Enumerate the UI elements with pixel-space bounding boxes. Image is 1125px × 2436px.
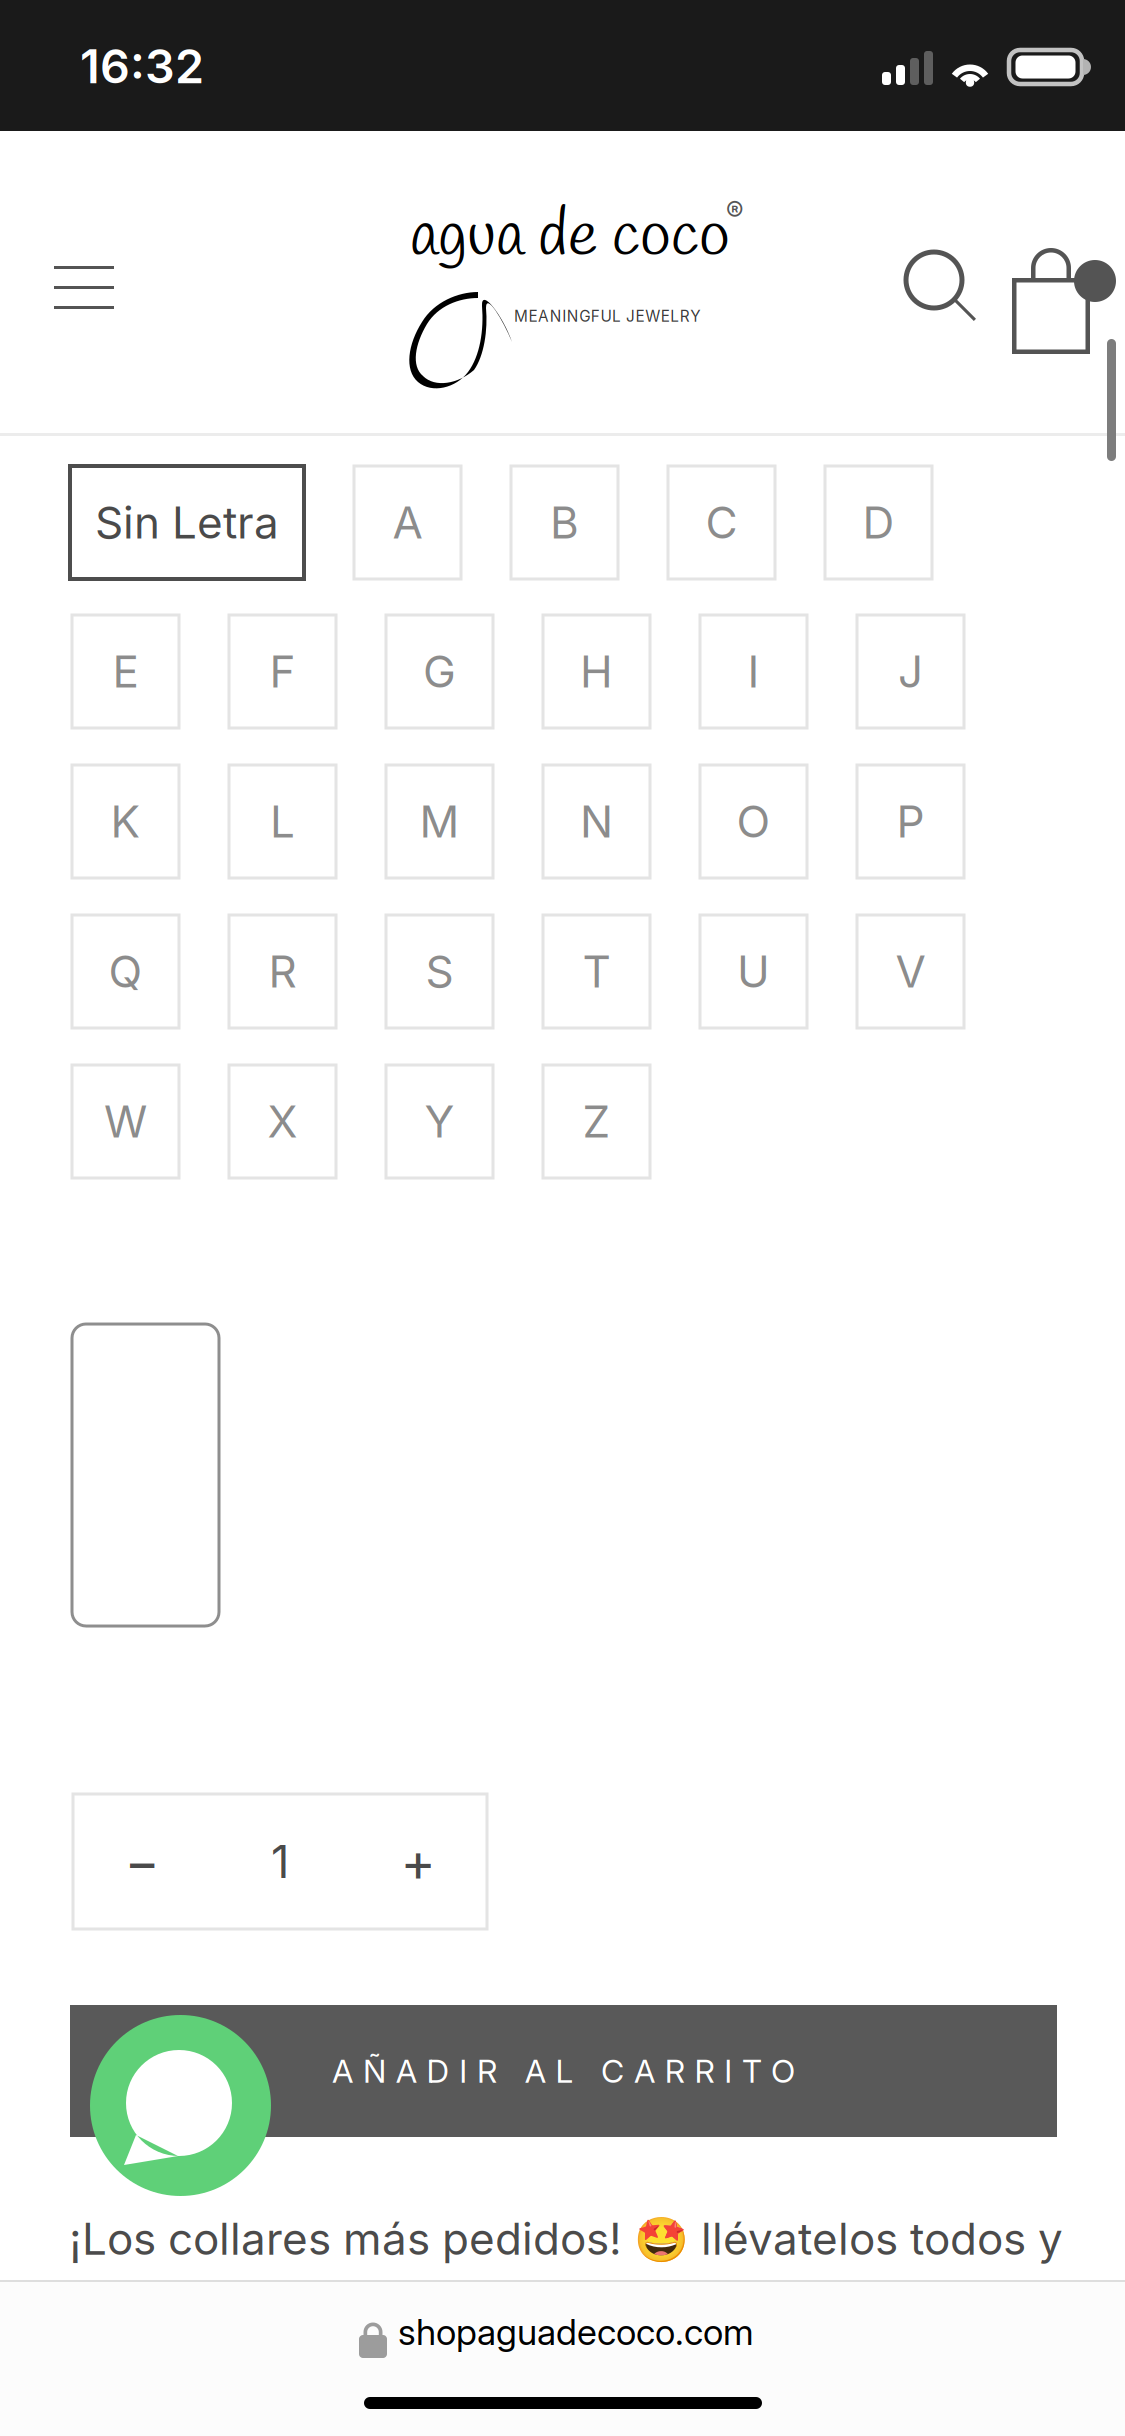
staticText: E bbox=[112, 645, 138, 698]
button[interactable]: U bbox=[700, 915, 807, 1028]
button[interactable]: F bbox=[229, 615, 336, 728]
button[interactable]: Increase quantity bbox=[349, 1794, 487, 1929]
staticText: B bbox=[550, 496, 579, 549]
button[interactable]: Y bbox=[386, 1065, 493, 1178]
button[interactable]: N bbox=[543, 765, 650, 878]
button[interactable]: Search bbox=[906, 252, 978, 324]
button[interactable]: Q bbox=[72, 915, 179, 1028]
staticText: H bbox=[580, 645, 613, 698]
staticText: W bbox=[104, 1095, 147, 1148]
button[interactable]: I bbox=[700, 615, 807, 728]
staticText: X bbox=[267, 1095, 297, 1148]
button[interactable]: Z bbox=[543, 1065, 650, 1178]
button[interactable]: AÑADIR AL CARRITO bbox=[70, 2005, 1057, 2137]
button[interactable]: E bbox=[72, 615, 179, 728]
button[interactable]: S bbox=[386, 915, 493, 1028]
button[interactable]: C bbox=[668, 466, 775, 579]
button[interactable]: G bbox=[386, 615, 493, 728]
staticText: shopaguadecoco.com bbox=[398, 2310, 754, 2354]
button[interactable]: Decrease quantity bbox=[73, 1794, 211, 1929]
button[interactable]: J bbox=[857, 615, 964, 728]
staticText: J bbox=[898, 645, 923, 698]
staticText: A bbox=[392, 496, 422, 549]
staticText: R bbox=[268, 945, 296, 998]
staticText: N bbox=[580, 795, 613, 848]
button[interactable]: V bbox=[857, 915, 964, 1028]
button[interactable]: D bbox=[825, 466, 932, 579]
staticText: − bbox=[124, 1829, 159, 1894]
button[interactable]: Chat on WhatsApp bbox=[90, 2015, 271, 2196]
button[interactable]: T bbox=[543, 915, 650, 1028]
staticText: MEANINGFUL JEWELRY bbox=[514, 307, 700, 326]
button[interactable]: P bbox=[857, 765, 964, 878]
staticText: G bbox=[423, 645, 456, 698]
button[interactable]: M bbox=[386, 765, 493, 878]
button[interactable]: K bbox=[72, 765, 179, 878]
staticText: T bbox=[582, 945, 610, 998]
staticText: M bbox=[419, 795, 459, 848]
button[interactable]: O bbox=[700, 765, 807, 878]
staticText: ® bbox=[726, 196, 743, 228]
staticText: C bbox=[705, 496, 737, 549]
staticText: 1 bbox=[271, 1834, 289, 1889]
staticText: K bbox=[110, 795, 140, 848]
staticText: Sin Letra bbox=[95, 496, 279, 549]
staticText: D bbox=[862, 496, 894, 549]
staticText: Z bbox=[582, 1095, 610, 1148]
button[interactable]: Shopping bag bbox=[1012, 246, 1116, 354]
staticText: ¡Los collares más pedidos! 🤩 llévatelos … bbox=[69, 2212, 1063, 2265]
button[interactable]: X bbox=[229, 1065, 336, 1178]
button[interactable]: R bbox=[229, 915, 336, 1028]
staticText: agua de coco bbox=[410, 196, 730, 280]
staticText: Y bbox=[424, 1095, 454, 1148]
staticText: P bbox=[896, 795, 924, 848]
staticText: F bbox=[269, 645, 295, 698]
staticText: + bbox=[400, 1829, 435, 1894]
button[interactable]: L bbox=[229, 765, 336, 878]
button[interactable]: H bbox=[543, 615, 650, 728]
button[interactable]: Menu bbox=[54, 266, 114, 309]
staticText: S bbox=[425, 945, 453, 998]
button[interactable]: shopaguadecoco.com bbox=[398, 2310, 754, 2354]
staticText: 16:32 bbox=[80, 38, 204, 94]
staticText: V bbox=[895, 945, 925, 998]
staticText: AÑADIR AL CARRITO bbox=[332, 2052, 795, 2090]
staticText: I bbox=[747, 645, 759, 698]
staticText: O bbox=[736, 795, 770, 848]
staticText: Q bbox=[108, 945, 142, 998]
button[interactable]: B bbox=[511, 466, 618, 579]
button[interactable]: A bbox=[354, 466, 461, 579]
staticText: L bbox=[270, 795, 295, 848]
button[interactable]: W bbox=[72, 1065, 179, 1178]
button[interactable]: Sin Letra bbox=[70, 466, 304, 579]
staticText: U bbox=[737, 945, 770, 998]
